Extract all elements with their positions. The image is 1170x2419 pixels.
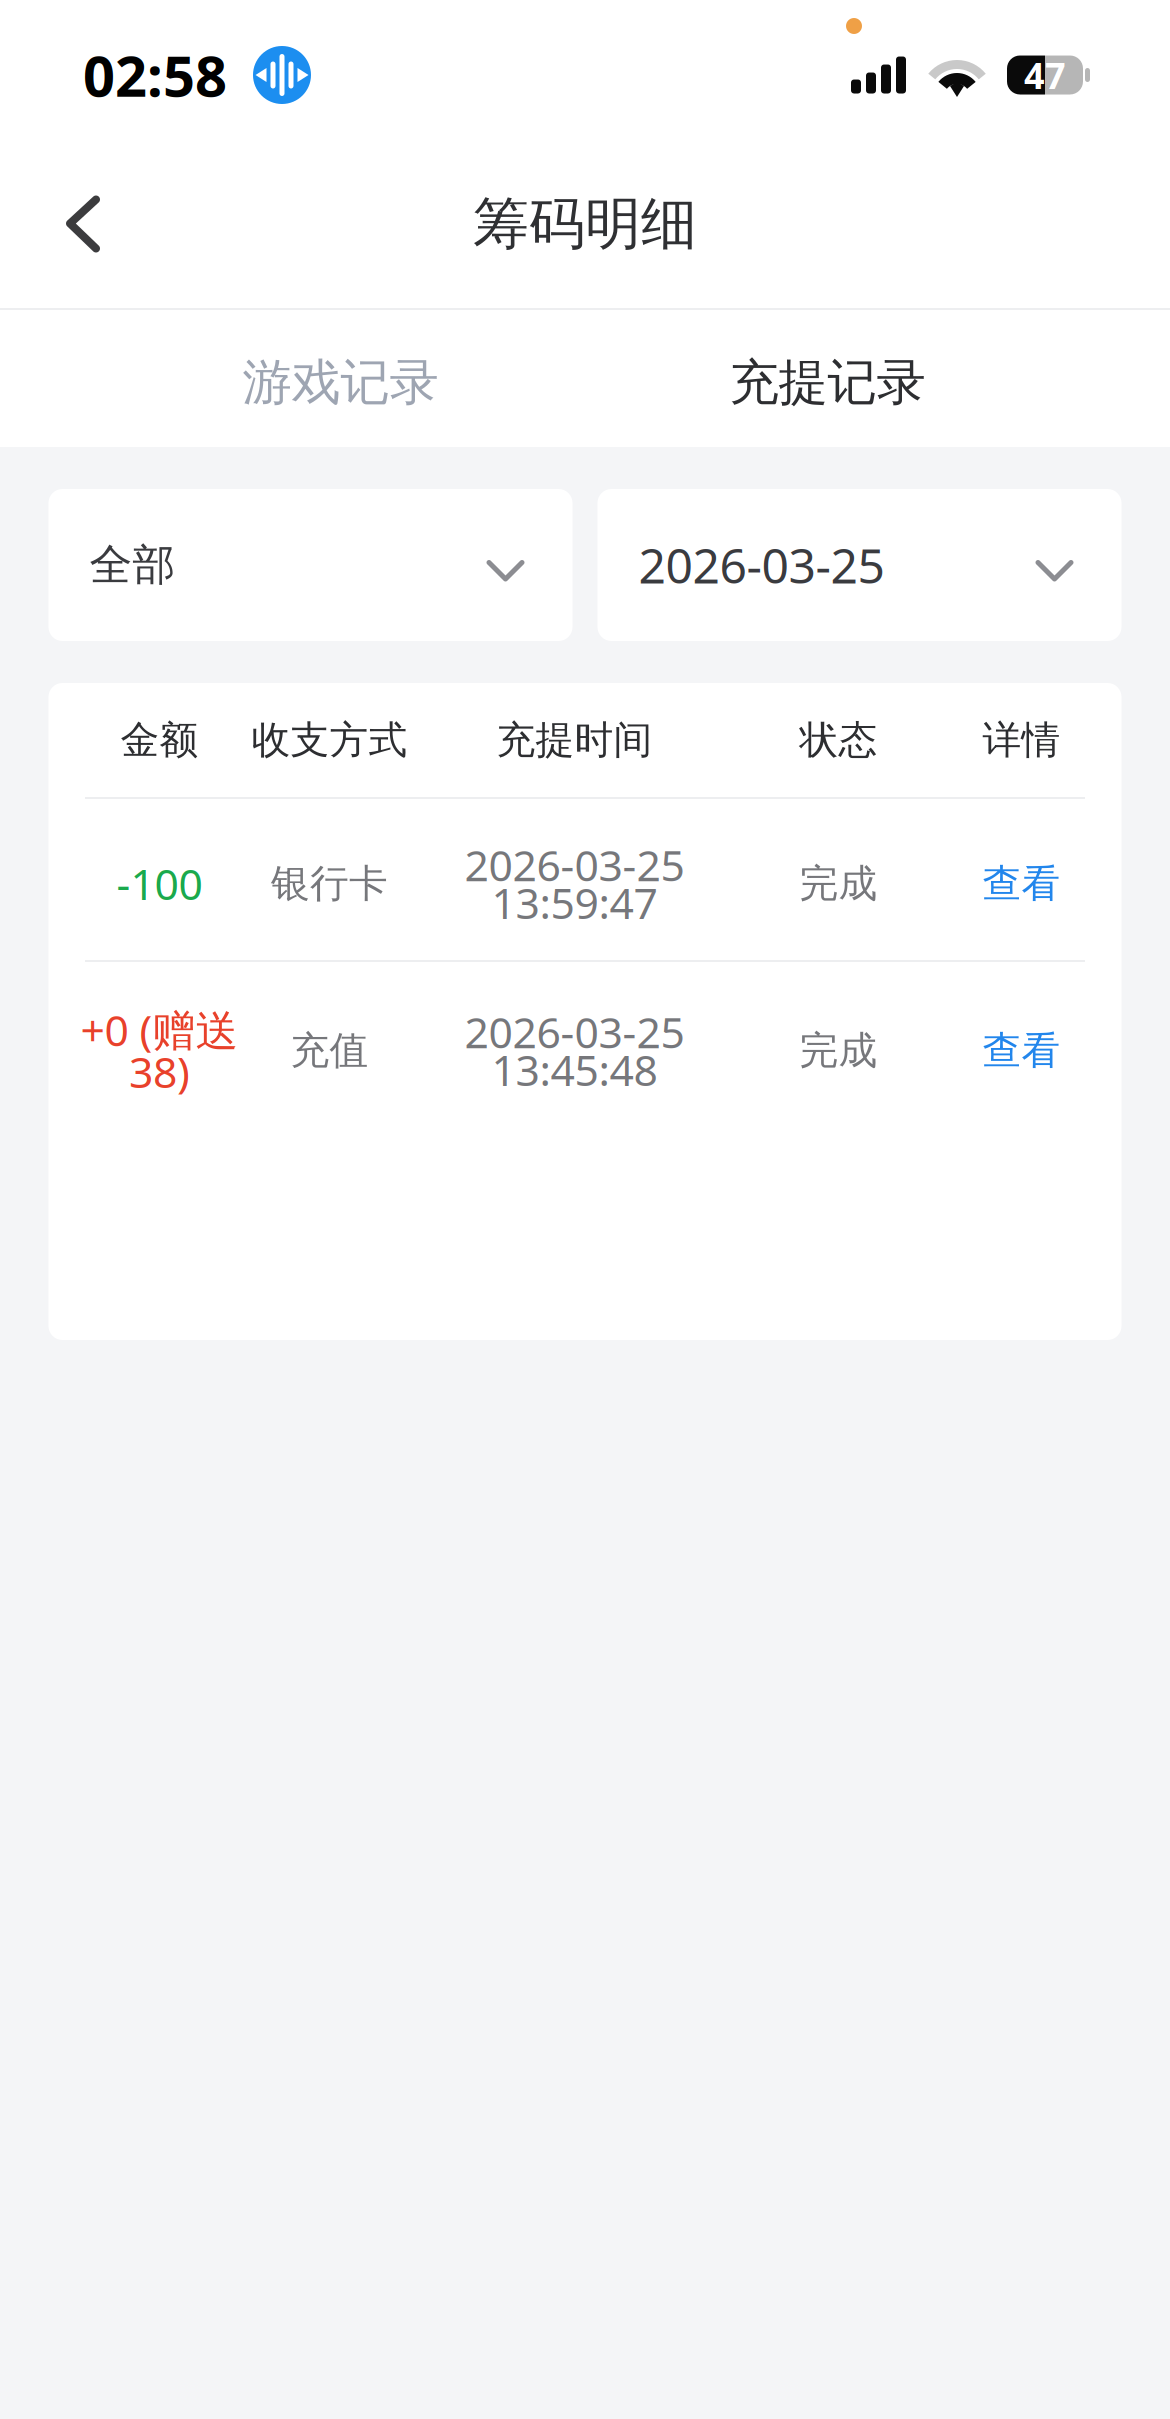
staticText: 完成 [799,1027,877,1074]
staticText: 2026-03-25 [464,836,684,893]
staticText: 充提时间 [496,716,652,764]
staticText: +0 (赠送 [80,1001,238,1058]
staticText: 2026-03-25 [638,533,884,597]
staticText: 详情 [982,716,1060,764]
button[interactable]: Back [23,164,143,284]
button[interactable]: 查看 [921,958,1121,1143]
staticText: 查看 [982,860,1060,907]
staticText: 充提记录 [729,352,925,413]
button[interactable]: Date filter [597,489,1121,641]
staticText: 收支方式 [251,716,407,764]
staticText: 银行卡 [271,860,388,907]
staticText: 状态 [799,716,877,764]
staticText: 47 [1024,51,1066,99]
staticText: 13:45:48 [491,1041,657,1098]
button[interactable]: Type filter [48,489,572,641]
staticText: 38) [129,1043,190,1100]
button[interactable]: 游戏记录 [120,314,560,451]
staticText: 筹码明细 [473,190,697,258]
staticText: -100 [116,855,202,912]
staticText: 金额 [120,716,198,764]
button[interactable]: 充提记录 [607,314,1047,451]
staticText: 游戏记录 [242,352,438,413]
staticText: 2026-03-25 [464,1003,684,1060]
button[interactable]: 查看 [921,803,1121,964]
staticText: 充值 [290,1027,368,1074]
staticText: 完成 [799,860,877,907]
staticText: 全部 [89,539,175,591]
staticText: 02:58 [83,38,227,112]
staticText: 查看 [982,1027,1060,1074]
staticText: 13:59:47 [491,874,657,931]
